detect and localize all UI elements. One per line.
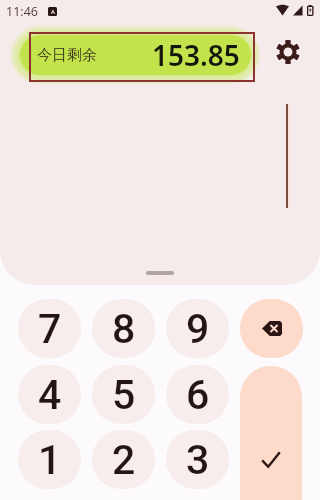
staticText: A bbox=[51, 8, 55, 16]
staticText: 4 bbox=[38, 371, 62, 419]
staticText: 1 bbox=[38, 436, 62, 484]
button[interactable]: 8 bbox=[92, 299, 155, 358]
button[interactable]: 7 bbox=[18, 299, 81, 358]
button[interactable]: 4 bbox=[18, 365, 81, 424]
staticText: 5 bbox=[112, 371, 136, 419]
staticText: 7 bbox=[38, 305, 62, 353]
button[interactable]: Settings bbox=[276, 40, 300, 64]
button[interactable]: Confirm bbox=[240, 366, 302, 500]
button[interactable]: 1 bbox=[18, 430, 81, 489]
staticText: 9 bbox=[186, 305, 210, 353]
button[interactable]: Backspace bbox=[240, 299, 303, 358]
button[interactable]: 5 bbox=[92, 365, 155, 424]
button[interactable]: 2 bbox=[92, 430, 155, 489]
button[interactable]: 3 bbox=[166, 430, 229, 489]
staticText: 3 bbox=[186, 436, 210, 484]
staticText: 153.85 bbox=[152, 36, 240, 74]
staticText: 2 bbox=[112, 436, 136, 484]
staticText: 今日剩余 bbox=[37, 46, 97, 65]
button[interactable]: 6 bbox=[166, 365, 229, 424]
button[interactable]: 9 bbox=[166, 299, 229, 358]
staticText: 6 bbox=[186, 371, 210, 419]
staticText: 8 bbox=[112, 305, 136, 353]
button[interactable]: 今日剩余 bbox=[20, 35, 251, 75]
staticText: 11:46 bbox=[6, 3, 38, 20]
